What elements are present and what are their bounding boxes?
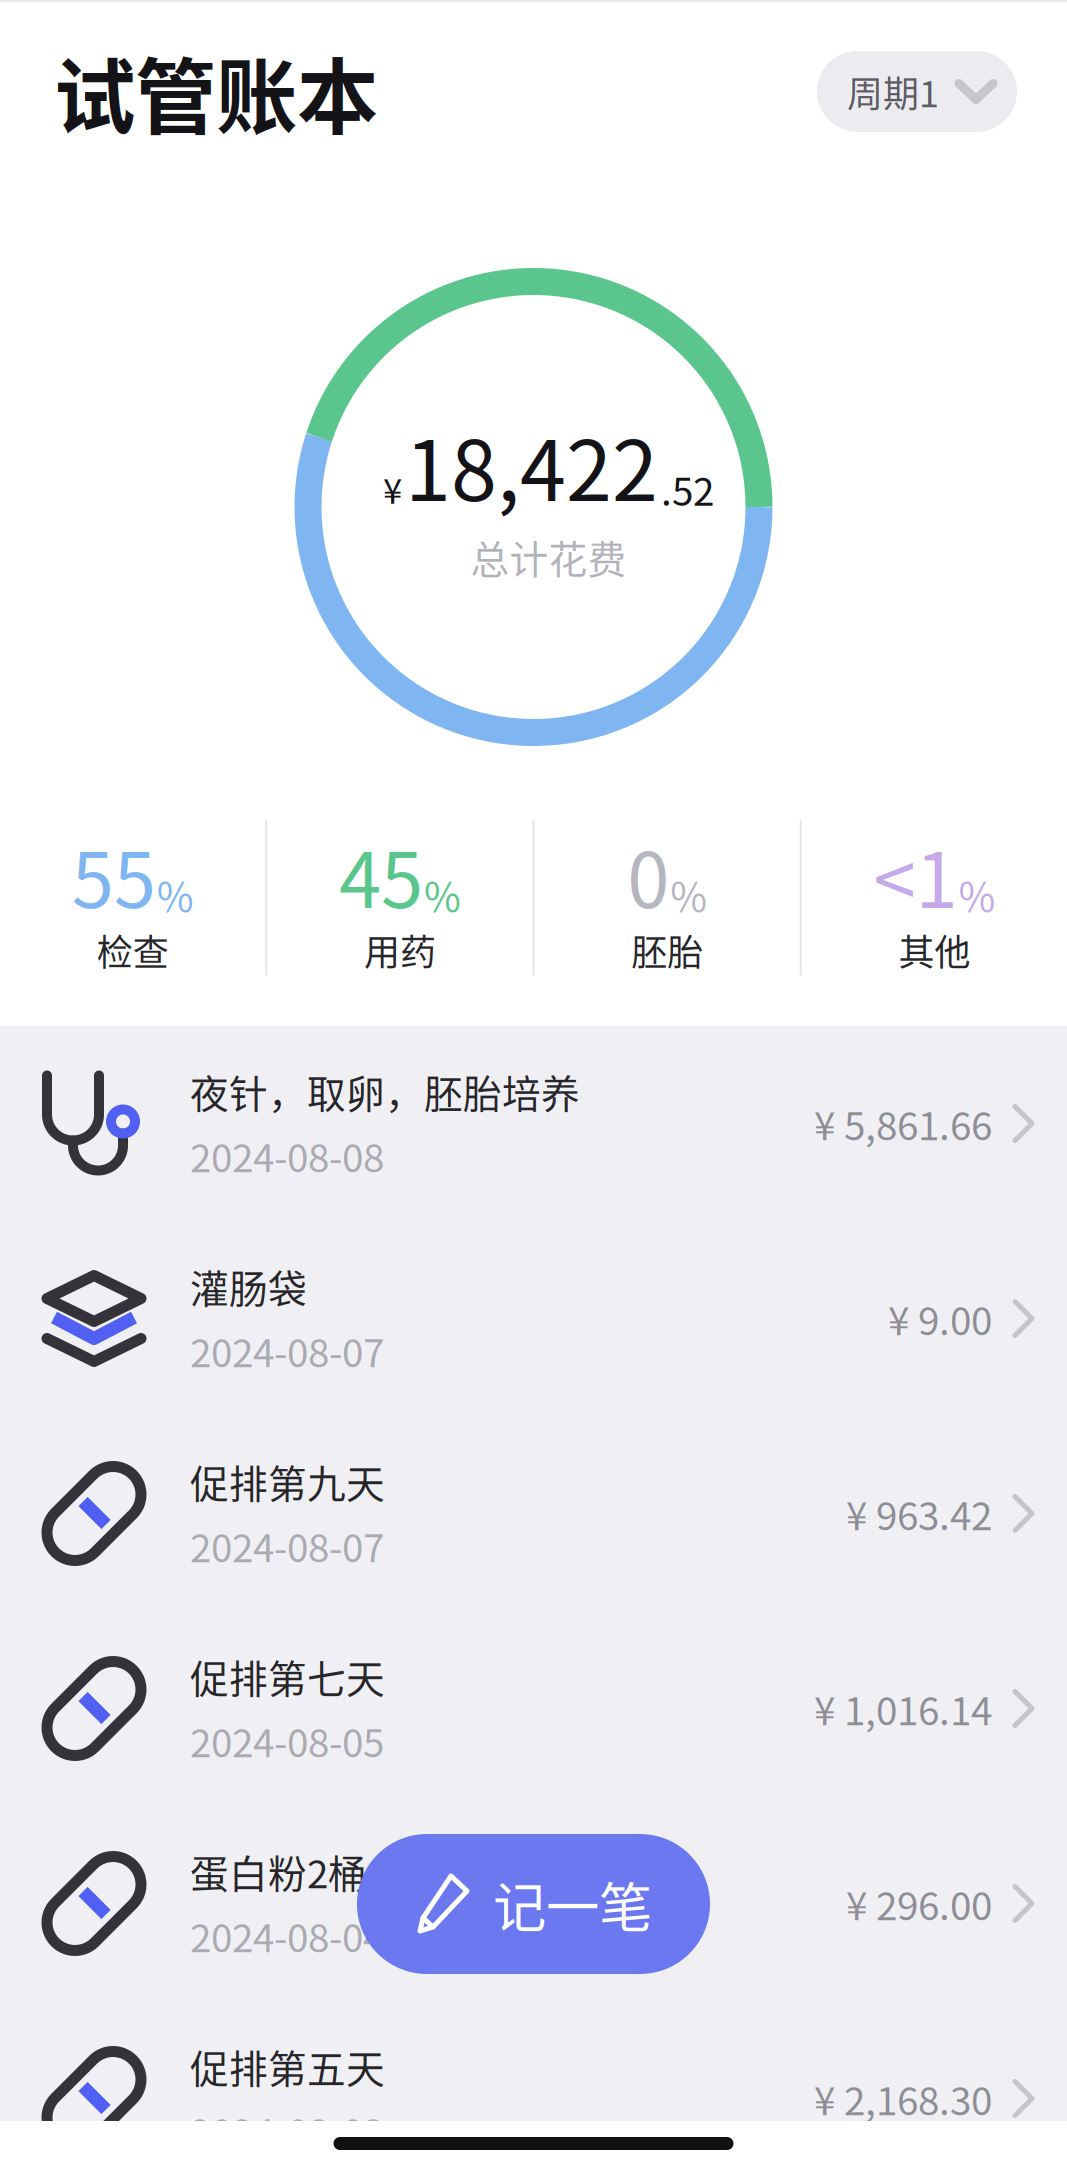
staticText: ¥ 2,168.30 xyxy=(814,2070,992,2126)
staticText: % xyxy=(424,865,461,923)
staticText: 2024-08-08 xyxy=(190,1127,384,1183)
staticText: 促排第九天 xyxy=(190,1453,385,1509)
staticText: 2024-08-05 xyxy=(190,1712,384,1768)
staticText: 2024-08-04 xyxy=(190,1907,384,1963)
staticText: 2024-08-03 xyxy=(190,2102,384,2158)
staticText: 其他 xyxy=(898,924,970,976)
staticText: ¥ 296.00 xyxy=(846,1875,992,1931)
staticText: 夜针，取卵，胚胎培养 xyxy=(190,1063,580,1119)
staticText: 2024-08-07 xyxy=(190,1517,384,1573)
staticText: 促排第七天 xyxy=(190,1648,385,1704)
staticText: % xyxy=(670,865,707,923)
staticText: 45 xyxy=(339,820,423,930)
staticText: 18,422 xyxy=(405,405,658,525)
button[interactable]: 促排第五天 xyxy=(0,2001,1067,2166)
staticText: 检查 xyxy=(97,924,169,976)
staticText: 总计花费 xyxy=(470,529,626,585)
button[interactable]: 周期1 xyxy=(817,51,1017,132)
staticText: 0 xyxy=(627,820,669,930)
staticText: <1 xyxy=(873,820,957,930)
staticText: ¥ 963.42 xyxy=(846,1485,992,1541)
staticText: 记一笔 xyxy=(493,1865,652,1943)
staticText: 用药 xyxy=(364,924,436,976)
staticText: ¥ 9.00 xyxy=(888,1290,992,1346)
button[interactable]: 促排第九天 xyxy=(0,1416,1067,1611)
staticText: 试管账本 xyxy=(54,33,378,150)
staticText: ¥ 5,861.66 xyxy=(814,1095,992,1151)
staticText: % xyxy=(958,865,995,923)
staticText: ¥ xyxy=(383,464,402,514)
staticText: 周期1 xyxy=(847,65,939,117)
staticText: 灌肠袋 xyxy=(190,1258,307,1314)
staticText: .52 xyxy=(661,461,714,517)
button[interactable]: 促排第七天 xyxy=(0,1611,1067,1806)
button[interactable]: 灌肠袋 xyxy=(0,1221,1067,1416)
button[interactable]: 记一笔 xyxy=(357,1834,710,1974)
staticText: 55 xyxy=(72,820,156,930)
button[interactable]: 夜针，取卵，胚胎培养 xyxy=(0,1026,1067,1221)
staticText: 促排第五天 xyxy=(190,2038,385,2094)
staticText: ¥ 1,016.14 xyxy=(814,1680,992,1736)
staticText: 蛋白粉2桶 xyxy=(190,1843,367,1899)
button[interactable]: 蛋白粉2桶 xyxy=(0,1806,1067,2001)
staticText: 胚胎 xyxy=(631,924,703,976)
staticText: 2024-08-07 xyxy=(190,1322,384,1378)
staticText: % xyxy=(157,865,194,923)
